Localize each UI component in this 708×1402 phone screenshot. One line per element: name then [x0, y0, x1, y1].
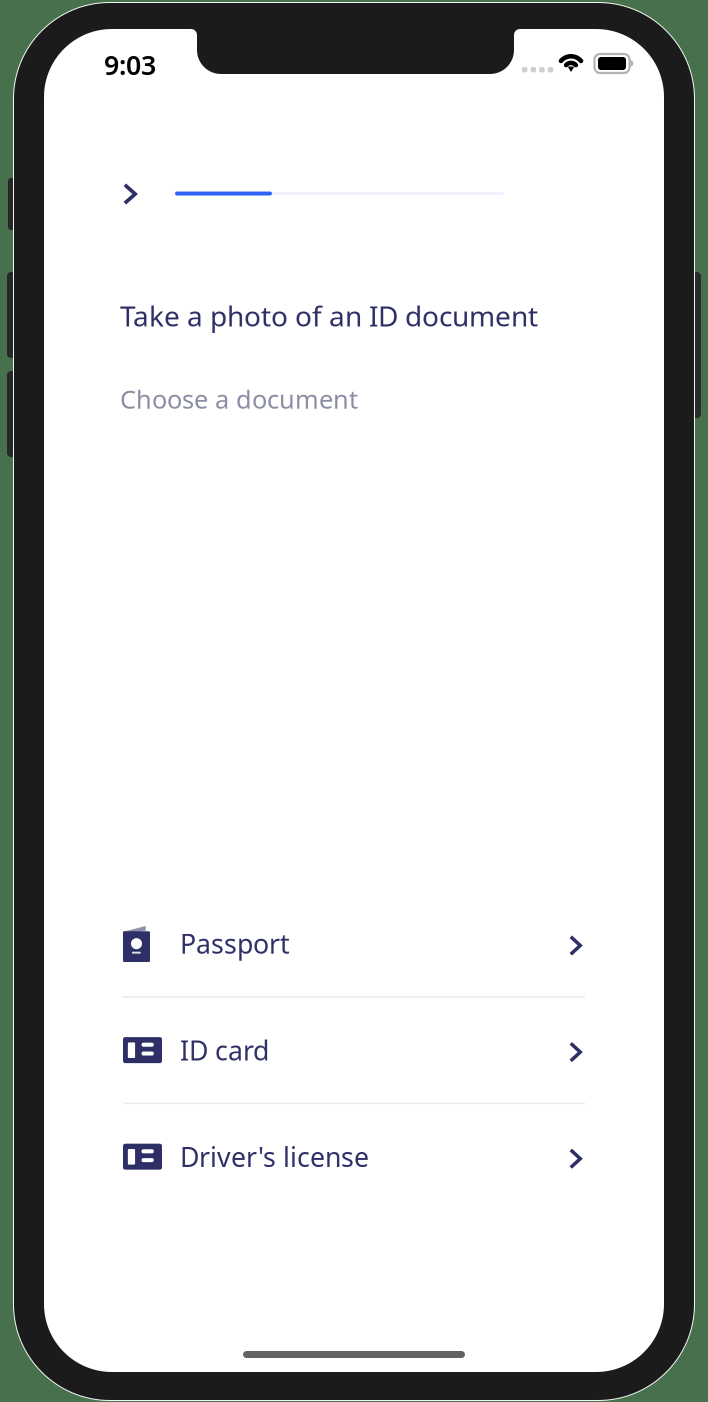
- staticText: ID card: [180, 1032, 269, 1068]
- button[interactable]: Back: [110, 174, 150, 214]
- button[interactable]: Driver's license: [123, 1104, 585, 1209]
- staticText: Take a photo of an ID document: [120, 297, 538, 334]
- staticText: Passport: [180, 926, 290, 961]
- staticText: 9:03: [104, 47, 156, 82]
- staticText: Choose a document: [120, 382, 358, 416]
- button[interactable]: Passport: [123, 891, 585, 996]
- button[interactable]: ID card: [123, 998, 585, 1103]
- staticText: Driver's license: [180, 1139, 369, 1174]
